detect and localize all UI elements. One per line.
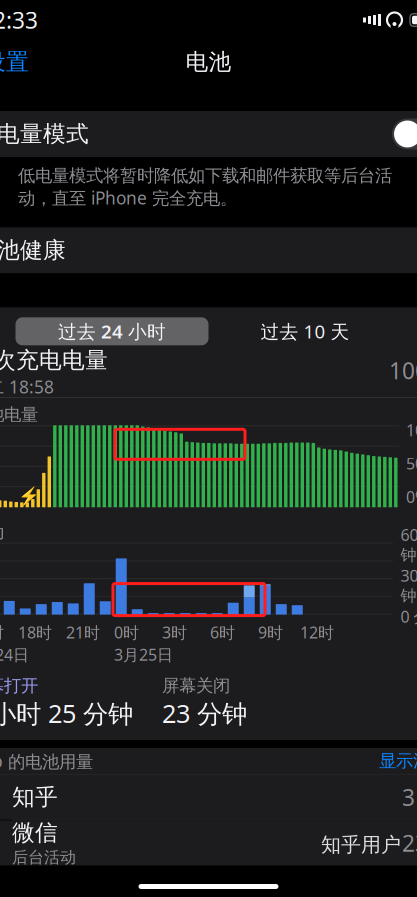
button[interactable]: 显示活动: [379, 750, 417, 772]
staticText: 活动: [0, 521, 4, 543]
button[interactable]: 信: [0, 820, 417, 865]
button[interactable]: 低电量模式: [0, 111, 417, 157]
staticText: 100%: [389, 355, 417, 385]
staticText: 低电量模式: [0, 120, 89, 148]
staticText: 3月25日: [114, 644, 173, 665]
staticText: 0%: [406, 486, 417, 507]
staticText: 3月24日: [0, 644, 29, 665]
staticText: 60 分钟: [400, 524, 417, 565]
staticText: 周二 18:58: [0, 375, 54, 398]
staticText: 4 小时 25 分钟: [0, 696, 133, 730]
staticText: 低电量模式将暂时降低如下载和邮件获取等后台活动，直至 iPhone 完全充电。: [18, 165, 392, 209]
staticText: 30 分钟: [400, 565, 417, 606]
button[interactable]: 过去 10 天: [208, 317, 401, 345]
button[interactable]: 电池健康: [0, 227, 417, 273]
staticText: 电池电量: [0, 404, 38, 425]
staticText: 50%: [406, 453, 417, 474]
button[interactable]: 知: [0, 775, 417, 820]
staticText: 知乎用户: [321, 832, 401, 857]
staticText: 过去 24 小时: [58, 319, 166, 344]
button[interactable]: 过去 24 小时: [15, 317, 208, 345]
staticText: ⚡: [18, 486, 40, 506]
staticText: 23 分钟: [162, 696, 247, 730]
staticText: 显示活动: [379, 750, 417, 772]
staticText: 12:33: [0, 5, 38, 35]
staticText: 电池: [185, 48, 231, 76]
staticText: 12时: [300, 622, 334, 643]
staticText: 后台活动: [12, 847, 76, 867]
staticText: 屏幕打开: [0, 675, 38, 696]
staticText: 设置: [0, 48, 29, 76]
staticText: App 的电池用量: [0, 749, 93, 773]
staticText: 微信: [12, 819, 58, 846]
staticText: 23%: [402, 828, 417, 858]
staticText: 21时: [66, 622, 100, 643]
staticText: 15时: [0, 622, 4, 643]
staticText: 9时: [258, 622, 283, 643]
staticText: 上次充电电量: [0, 346, 108, 374]
staticText: 31%: [402, 782, 417, 812]
staticText: 100%: [406, 419, 417, 440]
staticText: 0时: [114, 622, 139, 643]
staticText: 6时: [210, 622, 235, 643]
staticText: 屏幕关闭: [162, 675, 230, 696]
button[interactable]: 设置: [0, 42, 29, 82]
staticText: 知乎: [12, 783, 58, 811]
staticText: 电池健康: [0, 236, 66, 264]
staticText: 过去 10 天: [260, 319, 349, 344]
staticText: 3时: [162, 622, 187, 643]
staticText: 18时: [18, 622, 52, 643]
staticText: 0 分钟: [400, 606, 417, 627]
